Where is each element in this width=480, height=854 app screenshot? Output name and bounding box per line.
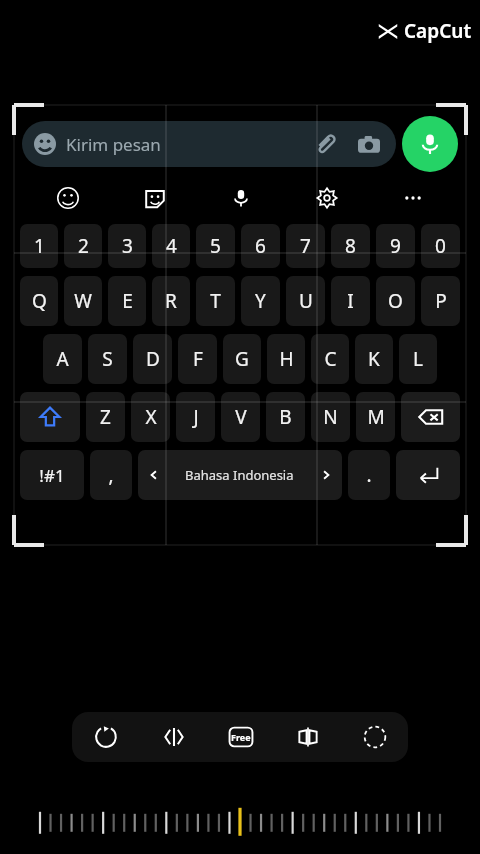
staticText: , <box>108 462 114 488</box>
button[interactable]: F <box>178 334 217 384</box>
button[interactable]: T <box>196 276 235 326</box>
button[interactable]: R <box>152 276 190 326</box>
staticText: Bahasa Indonesia <box>185 466 294 484</box>
staticText: 6 <box>255 233 266 259</box>
button[interactable]: !#1 <box>20 450 84 500</box>
staticText: 0 <box>435 233 446 259</box>
button[interactable]: K <box>355 334 393 384</box>
button[interactable]: 1 <box>20 224 58 268</box>
staticText: L <box>413 346 423 372</box>
staticText: B <box>279 404 292 430</box>
button[interactable]: E <box>108 276 146 326</box>
button[interactable]: Stickers <box>111 177 198 219</box>
button[interactable]: 7 <box>286 224 325 268</box>
button[interactable]: U <box>286 276 325 326</box>
button[interactable]: C <box>311 334 349 384</box>
button[interactable]: X <box>131 392 170 442</box>
button[interactable]: Settings <box>284 177 370 219</box>
button[interactable]: , <box>90 450 132 500</box>
button[interactable]: 9 <box>376 224 415 268</box>
button[interactable]: M <box>356 392 395 442</box>
button[interactable]: Mask <box>341 712 408 762</box>
staticText: !#1 <box>39 464 65 487</box>
button[interactable]: Enter <box>396 450 460 500</box>
other: Emoji <box>34 133 56 155</box>
button[interactable]: O <box>376 276 415 326</box>
button[interactable]: Q <box>20 276 58 326</box>
button[interactable]: Y <box>241 276 280 326</box>
button[interactable]: B <box>266 392 305 442</box>
button[interactable]: H <box>267 334 305 384</box>
staticText: Free <box>231 731 251 743</box>
button[interactable]: Z <box>86 392 125 442</box>
button[interactable]: Rotate <box>72 712 140 762</box>
button[interactable]: G <box>223 334 261 384</box>
staticText: J <box>193 404 199 430</box>
button[interactable]: 4 <box>152 224 190 268</box>
button[interactable]: W <box>64 276 102 326</box>
staticText: 7 <box>300 233 311 259</box>
staticText: U <box>299 288 313 314</box>
button[interactable]: . <box>348 450 390 500</box>
staticText: CapCut <box>404 18 472 44</box>
staticText: E <box>122 288 133 314</box>
button[interactable]: 8 <box>331 224 370 268</box>
staticText: 5 <box>210 233 221 259</box>
staticText: C <box>324 346 337 372</box>
staticText: X <box>145 404 157 430</box>
button[interactable]: Emoji <box>24 177 111 219</box>
button[interactable]: 0 <box>421 224 460 268</box>
staticText: M <box>367 404 385 430</box>
staticText: 1 <box>34 233 45 259</box>
button[interactable]: 5 <box>196 224 235 268</box>
button[interactable]: A <box>43 334 82 384</box>
button[interactable]: Mirror <box>274 712 341 762</box>
button[interactable]: Backspace <box>401 392 460 442</box>
button[interactable]: Voice message <box>402 116 458 172</box>
button[interactable]: S <box>88 334 127 384</box>
staticText: 2 <box>78 233 89 259</box>
staticText: 9 <box>390 233 401 259</box>
staticText: I <box>347 288 354 314</box>
staticText: D <box>146 346 160 372</box>
staticText: P <box>435 288 447 314</box>
button[interactable]: Shift <box>20 392 80 442</box>
staticText: 8 <box>345 233 356 259</box>
staticText: W <box>74 288 92 314</box>
button[interactable]: D <box>133 334 172 384</box>
button[interactable]: J <box>176 392 215 442</box>
button[interactable]: 3 <box>108 224 146 268</box>
button[interactable]: Voice input <box>198 177 284 219</box>
button[interactable]: 6 <box>241 224 280 268</box>
button[interactable]: Attach <box>310 129 340 159</box>
staticText: Kirim pesan <box>66 133 161 156</box>
button[interactable]: V <box>221 392 260 442</box>
staticText: A <box>56 346 69 372</box>
staticText: N <box>323 404 338 430</box>
staticText: Q <box>32 288 47 314</box>
staticText: 4 <box>166 233 177 259</box>
staticText: . <box>366 462 372 488</box>
button[interactable]: Free ratio <box>207 712 274 762</box>
button[interactable]: I <box>331 276 370 326</box>
button[interactable]: N <box>311 392 350 442</box>
staticText: S <box>102 346 113 372</box>
staticText: T <box>210 288 221 314</box>
staticText: Y <box>255 288 266 314</box>
button[interactable]: 2 <box>64 224 102 268</box>
staticText: F <box>193 346 203 372</box>
staticText: 3 <box>122 233 133 259</box>
button[interactable]: Emoji <box>22 121 396 167</box>
staticText: G <box>235 346 249 372</box>
staticText: R <box>165 288 177 314</box>
staticText: H <box>279 346 294 372</box>
staticText: K <box>368 346 380 372</box>
button[interactable]: Camera <box>354 129 384 159</box>
staticText: O <box>388 288 403 314</box>
button[interactable]: Bahasa Indonesia <box>138 450 342 500</box>
button[interactable]: L <box>399 334 437 384</box>
button[interactable]: Trim <box>140 712 207 762</box>
button[interactable]: More options <box>370 177 456 219</box>
button[interactable]: P <box>421 276 460 326</box>
staticText: V <box>235 404 247 430</box>
